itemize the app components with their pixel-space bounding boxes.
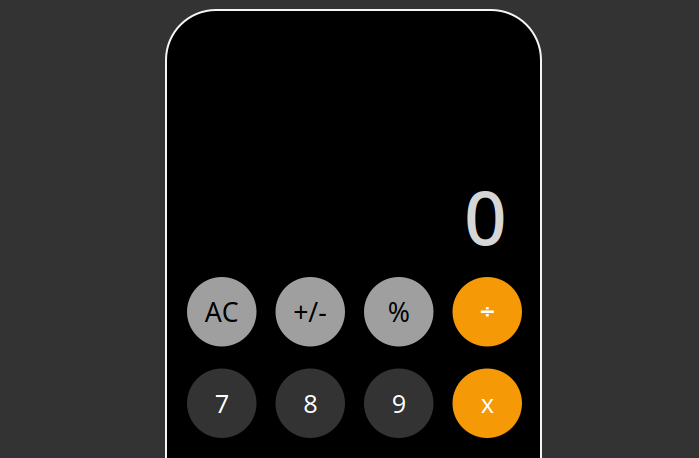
button[interactable]: Divide [452,277,522,346]
staticText: 8 [303,386,317,420]
staticText: x [481,386,494,420]
button[interactable]: 9 [364,368,433,438]
button[interactable]: % [364,277,433,346]
staticText: 0 [464,166,507,266]
staticText: 7 [215,386,229,420]
staticText: % [388,294,410,329]
staticText: +/- [293,294,327,329]
staticText: 9 [392,386,406,420]
staticText: AC [205,294,239,329]
button[interactable]: 7 [187,368,256,438]
button[interactable]: x [452,368,522,438]
button[interactable]: 8 [275,368,345,438]
button[interactable]: AC [187,277,256,346]
button[interactable]: +/- [275,277,345,346]
